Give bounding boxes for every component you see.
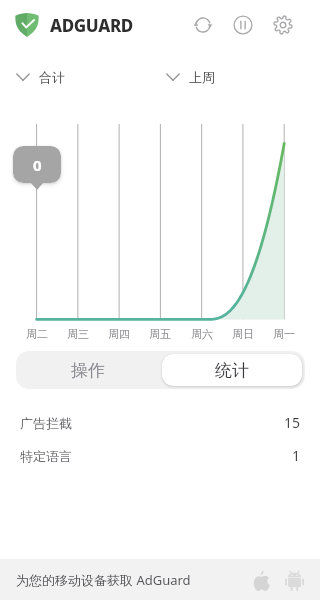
button[interactable]: Download for Android: [282, 568, 306, 592]
staticText: 周五: [142, 327, 178, 341]
staticText: 上周: [189, 69, 215, 85]
staticText: 周四: [101, 327, 137, 341]
staticText: ADGUARD: [50, 14, 133, 37]
staticText: 0: [33, 155, 42, 175]
button[interactable]: Refresh: [188, 10, 218, 40]
button[interactable]: Settings: [268, 10, 298, 40]
button[interactable]: 特定语言: [0, 439, 320, 472]
button[interactable]: 统计: [162, 354, 302, 386]
staticText: 周三: [60, 327, 96, 341]
button[interactable]: 广告拦截: [0, 406, 320, 439]
button[interactable]: Pause: [228, 10, 258, 40]
button[interactable]: 合计: [16, 65, 65, 89]
staticText: 广告拦截: [20, 415, 72, 431]
staticText: 周二: [19, 327, 55, 341]
staticText: 为您的移动设备获取 AdGuard: [16, 571, 191, 589]
staticText: 1: [292, 446, 301, 465]
staticText: 周六: [184, 327, 220, 341]
staticText: 统计: [215, 360, 249, 381]
staticText: 特定语言: [20, 448, 72, 464]
staticText: 操作: [71, 360, 105, 381]
button[interactable]: 操作: [16, 351, 160, 389]
staticText: 合计: [39, 69, 65, 85]
staticText: 15: [284, 413, 301, 432]
button[interactable]: Download for iOS: [249, 568, 273, 592]
staticText: 周日: [225, 327, 261, 341]
button[interactable]: 上周: [166, 65, 215, 89]
staticText: 周一: [266, 327, 302, 341]
